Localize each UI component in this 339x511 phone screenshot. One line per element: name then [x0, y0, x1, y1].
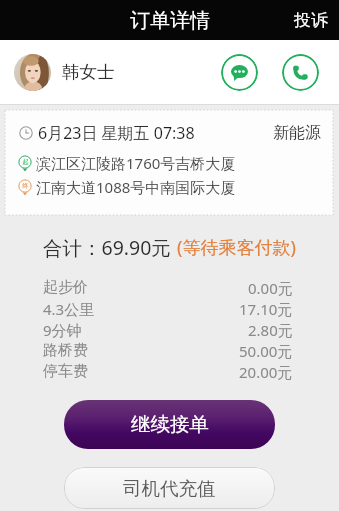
- staticText: 20.00元: [239, 362, 293, 382]
- staticText: 停车费: [43, 362, 88, 381]
- staticText: 9分钟: [43, 320, 82, 340]
- staticText: 6月23日 星期五 07:38: [38, 122, 195, 144]
- button[interactable]: Call: [282, 54, 319, 91]
- button[interactable]: 6月23日 星期五 07:38: [5, 110, 333, 215]
- staticText: 订单详情: [130, 8, 210, 33]
- staticText: 滨江区江陵路1760号吉桥大厦: [36, 153, 236, 173]
- staticText: 2.80元: [248, 320, 293, 340]
- staticText: 投诉: [294, 10, 328, 31]
- staticText: 合计：69.90元: [43, 234, 171, 261]
- staticText: 江南大道1088号中南国际大厦: [36, 177, 236, 197]
- button[interactable]: 司机代充值: [64, 467, 275, 509]
- staticText: 司机代充值: [123, 477, 216, 500]
- staticText: 韩女士: [62, 61, 115, 83]
- staticText: 路桥费: [43, 341, 88, 360]
- staticText: 0.00元: [248, 278, 293, 298]
- staticText: 50.00元: [239, 341, 293, 361]
- button[interactable]: 继续接单: [64, 400, 275, 449]
- staticText: (等待乘客付款): [177, 235, 296, 260]
- staticText: 起: [22, 158, 29, 166]
- staticText: 起步价: [43, 278, 88, 297]
- staticText: 终: [22, 182, 29, 190]
- button[interactable]: 投诉: [283, 2, 339, 39]
- button[interactable]: Message: [221, 54, 258, 91]
- button[interactable]: Avatar: [14, 54, 51, 91]
- staticText: 新能源: [273, 123, 321, 143]
- staticText: 继续接单: [131, 412, 209, 437]
- staticText: 17.10元: [239, 299, 293, 319]
- staticText: 4.3公里: [43, 299, 95, 319]
